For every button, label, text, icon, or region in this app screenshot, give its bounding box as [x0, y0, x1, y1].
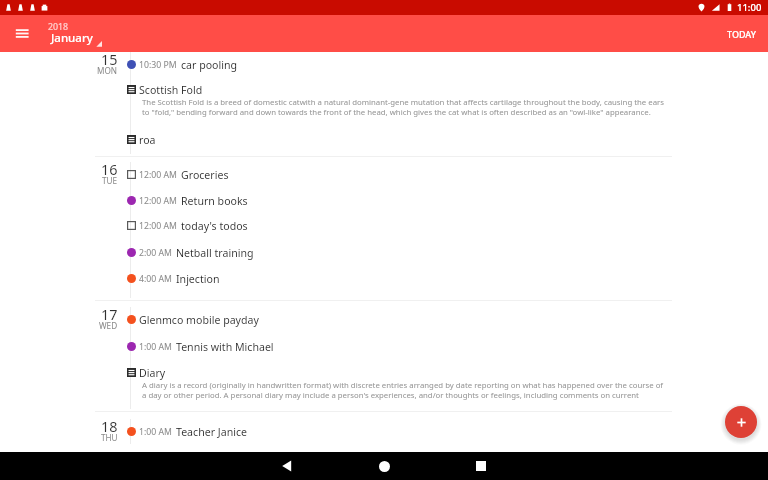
- staticText: 12:00 AM: [139, 195, 177, 207]
- staticText: 15: [101, 50, 118, 70]
- staticText: Teacher Janice: [176, 425, 247, 439]
- button[interactable]: 2018: [48, 21, 103, 49]
- staticText: Return books: [181, 194, 248, 208]
- staticText: 2018: [48, 21, 69, 33]
- staticText: WED: [99, 320, 118, 331]
- staticText: Scottish Fold: [139, 83, 203, 97]
- button[interactable]: Home: [370, 452, 398, 480]
- staticText: today's todos: [181, 219, 248, 233]
- staticText: 17: [101, 305, 118, 325]
- button[interactable]: 12:00 AM: [121, 162, 673, 187]
- button[interactable]: 1:00 AM: [121, 419, 673, 444]
- staticText: 1:00 AM: [139, 341, 172, 353]
- staticText: Tennis with Michael: [176, 340, 274, 354]
- button[interactable]: Scottish Fold: [121, 77, 673, 122]
- button[interactable]: Open navigation menu: [8, 20, 36, 48]
- staticText: 11:00: [737, 1, 762, 14]
- staticText: January: [51, 30, 93, 46]
- button[interactable]: 16: [0, 160, 118, 191]
- staticText: Netball training: [176, 246, 254, 260]
- staticText: 1:00 AM: [139, 426, 172, 438]
- staticText: Injection: [176, 272, 220, 286]
- button[interactable]: 12:00 AM: [121, 213, 673, 238]
- staticText: 12:00 AM: [139, 220, 177, 232]
- button[interactable]: 12:00 AM: [121, 188, 673, 213]
- button[interactable]: Back: [273, 452, 301, 480]
- staticText: Glenmco mobile payday: [139, 313, 259, 327]
- staticText: 16: [101, 160, 118, 180]
- button[interactable]: Add event: [725, 406, 757, 438]
- button[interactable]: Recent apps: [467, 452, 495, 480]
- button[interactable]: 15: [0, 50, 118, 81]
- staticText: TODAY: [727, 28, 756, 40]
- staticText: car pooling: [181, 58, 238, 72]
- staticText: A diary is a record (originally in handw…: [142, 380, 664, 400]
- staticText: 12:00 AM: [139, 169, 177, 181]
- button[interactable]: Diary: [121, 360, 673, 405]
- button[interactable]: 17: [0, 305, 118, 336]
- button[interactable]: Glenmco mobile payday: [121, 307, 673, 332]
- button[interactable]: 2:00 AM: [121, 240, 673, 265]
- staticText: 18: [101, 417, 118, 437]
- staticText: 10:30 PM: [139, 59, 177, 71]
- button[interactable]: 18: [0, 417, 118, 448]
- staticText: Groceries: [181, 168, 229, 182]
- staticText: The Scottish Fold is a breed of domestic…: [142, 97, 664, 117]
- staticText: roa: [139, 133, 156, 147]
- button[interactable]: roa: [121, 127, 673, 152]
- staticText: 2:00 AM: [139, 247, 172, 259]
- staticText: Diary: [139, 366, 166, 380]
- staticText: MON: [97, 65, 118, 76]
- staticText: 4:00 AM: [139, 273, 172, 285]
- staticText: TUE: [102, 175, 118, 186]
- button[interactable]: 10:30 PM: [121, 52, 673, 77]
- button[interactable]: 4:00 AM: [121, 266, 673, 291]
- staticText: THU: [101, 432, 118, 443]
- button[interactable]: 1:00 AM: [121, 334, 673, 359]
- button[interactable]: TODAY: [721, 23, 762, 45]
